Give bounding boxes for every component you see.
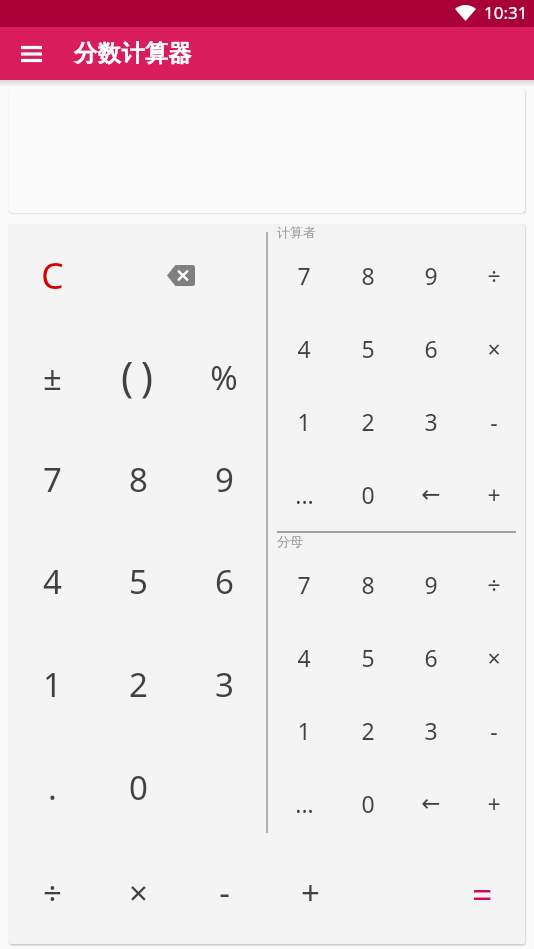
- button[interactable]: ...: [272, 767, 336, 840]
- staticText: 分数计算器: [74, 39, 192, 68]
- staticText: 5: [129, 559, 148, 604]
- button[interactable]: ±: [9, 326, 95, 428]
- button[interactable]: 3: [399, 694, 462, 767]
- staticText: 6: [424, 333, 438, 364]
- button[interactable]: +: [267, 841, 353, 944]
- button[interactable]: Open navigation menu: [10, 27, 52, 80]
- button[interactable]: %: [181, 326, 267, 428]
- staticText: ...: [295, 479, 314, 510]
- staticText: 9: [215, 457, 234, 502]
- staticText: ÷: [43, 870, 62, 915]
- staticText: 5: [361, 642, 375, 673]
- staticText: 10:31: [484, 1, 528, 24]
- button[interactable]: -: [462, 694, 525, 767]
- button[interactable]: 1: [272, 694, 336, 767]
- staticText: %: [210, 355, 238, 400]
- button[interactable]: 4: [272, 621, 336, 694]
- staticText: -: [490, 406, 498, 437]
- staticText: 分母: [277, 533, 303, 548]
- button[interactable]: 9: [399, 548, 462, 621]
- button[interactable]: 8: [336, 548, 399, 621]
- staticText: +: [301, 870, 320, 915]
- staticText: 4: [43, 559, 62, 604]
- button[interactable]: 7: [272, 548, 336, 621]
- staticText: 8: [129, 457, 148, 502]
- staticText: ÷: [487, 569, 501, 600]
- button[interactable]: 9: [181, 428, 267, 530]
- staticText: 0: [361, 479, 375, 510]
- button[interactable]: 9: [399, 239, 462, 312]
- staticText: ±: [43, 355, 62, 400]
- staticText: 2: [361, 406, 375, 437]
- button[interactable]: ×: [462, 621, 525, 694]
- staticText: 2: [129, 662, 148, 707]
- staticText: 7: [297, 260, 311, 291]
- button[interactable]: 8: [95, 428, 181, 530]
- button[interactable]: 2: [336, 385, 399, 458]
- staticText: 7: [43, 457, 62, 502]
- button[interactable]: =: [439, 841, 525, 944]
- staticText: -: [490, 715, 498, 746]
- button[interactable]: 3: [399, 385, 462, 458]
- button[interactable]: 5: [95, 530, 181, 633]
- staticText: -: [219, 870, 230, 915]
- button[interactable]: ÷: [462, 548, 525, 621]
- button[interactable]: 6: [399, 621, 462, 694]
- staticText: 4: [297, 642, 311, 673]
- staticText: =: [472, 870, 493, 919]
- staticText: 1: [297, 406, 311, 437]
- button[interactable]: ←: [399, 767, 462, 840]
- button[interactable]: 4: [9, 530, 95, 633]
- button[interactable]: +: [462, 458, 525, 531]
- button[interactable]: 2: [336, 694, 399, 767]
- staticText: +: [487, 479, 501, 510]
- button[interactable]: ...: [272, 458, 336, 531]
- staticText: 7: [297, 569, 311, 600]
- button[interactable]: 7: [9, 428, 95, 530]
- button[interactable]: 0: [336, 458, 399, 531]
- button[interactable]: .: [9, 736, 95, 839]
- button[interactable]: -: [181, 841, 267, 944]
- staticText: 9: [424, 260, 438, 291]
- button[interactable]: ÷: [462, 239, 525, 312]
- staticText: ×: [487, 642, 501, 673]
- button[interactable]: 6: [181, 530, 267, 633]
- button[interactable]: 4: [272, 312, 336, 385]
- staticText: 1: [43, 662, 62, 707]
- button[interactable]: +: [462, 767, 525, 840]
- button[interactable]: -: [462, 385, 525, 458]
- button[interactable]: 1: [272, 385, 336, 458]
- button[interactable]: Backspace: [95, 224, 267, 326]
- staticText: ×: [487, 333, 501, 364]
- button[interactable]: 5: [336, 621, 399, 694]
- button[interactable]: C: [9, 224, 95, 326]
- staticText: ÷: [487, 260, 501, 291]
- button[interactable]: 0: [95, 736, 181, 839]
- button[interactable]: 7: [272, 239, 336, 312]
- button[interactable]: (): [95, 326, 181, 428]
- button[interactable]: 0: [336, 767, 399, 840]
- button[interactable]: 6: [399, 312, 462, 385]
- button[interactable]: 2: [95, 633, 181, 736]
- staticText: 3: [424, 715, 438, 746]
- button[interactable]: ×: [462, 312, 525, 385]
- button[interactable]: ÷: [9, 841, 95, 944]
- staticText: 计算者: [277, 224, 316, 239]
- button[interactable]: 5: [336, 312, 399, 385]
- staticText: 6: [424, 642, 438, 673]
- button[interactable]: 3: [181, 633, 267, 736]
- staticText: ←: [421, 481, 441, 508]
- staticText: 9: [424, 569, 438, 600]
- staticText: 4: [297, 333, 311, 364]
- button[interactable]: ←: [399, 458, 462, 531]
- staticText: C: [41, 251, 64, 300]
- button[interactable]: 1: [9, 633, 95, 736]
- staticText: 0: [361, 788, 375, 819]
- button[interactable]: ×: [95, 841, 181, 944]
- staticText: 1: [297, 715, 311, 746]
- staticText: 3: [424, 406, 438, 437]
- staticText: 0: [129, 765, 148, 810]
- staticText: 2: [361, 715, 375, 746]
- button[interactable]: 8: [336, 239, 399, 312]
- staticText: +: [487, 788, 501, 819]
